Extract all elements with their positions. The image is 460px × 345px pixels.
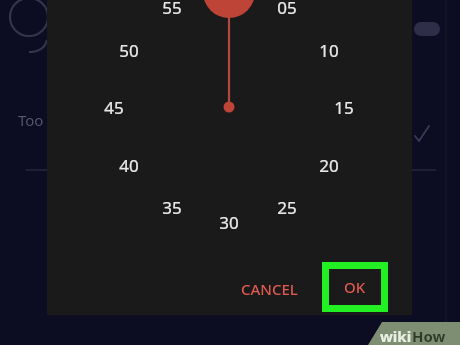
button[interactable]: 35 (155, 195, 189, 219)
button[interactable]: 10 (312, 38, 346, 62)
button[interactable]: 30 (212, 210, 246, 234)
button[interactable]: 55 (155, 0, 189, 19)
button[interactable]: 45 (97, 95, 131, 119)
staticText: 40 (119, 154, 139, 177)
staticText: wiki (380, 326, 412, 345)
staticText: 55 (162, 0, 182, 19)
staticText: 25 (277, 196, 297, 219)
staticText: 30 (219, 211, 239, 234)
button[interactable]: 05 (270, 0, 304, 19)
staticText: 35 (162, 196, 182, 219)
staticText: 10 (319, 39, 339, 62)
staticText: How (412, 326, 446, 345)
staticText: 20 (319, 154, 339, 177)
staticText: 45 (104, 96, 124, 119)
button[interactable]: 15 (327, 95, 361, 119)
button[interactable]: OK (322, 262, 388, 312)
button[interactable]: Toggle (414, 22, 440, 36)
button[interactable]: 40 (112, 153, 146, 177)
staticText: OK (344, 277, 366, 297)
staticText: 15 (334, 96, 354, 119)
staticText: Too (18, 110, 44, 130)
staticText: 05 (277, 0, 297, 19)
button[interactable]: 25 (270, 195, 304, 219)
button[interactable]: 20 (312, 153, 346, 177)
button[interactable]: CANCEL (228, 274, 310, 304)
button[interactable]: 50 (112, 38, 146, 62)
staticText: 50 (119, 39, 139, 62)
staticText: CANCEL (241, 279, 298, 299)
